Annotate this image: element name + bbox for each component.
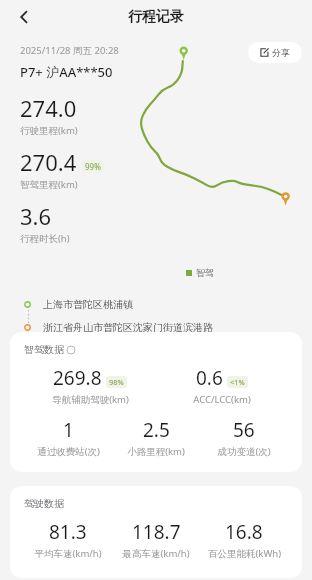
staticText: 最高车速(km/h) [122, 547, 190, 560]
staticText: 118.7 [132, 519, 181, 545]
staticText: 3.6 [20, 201, 52, 231]
staticText: 0.6 [196, 365, 223, 391]
staticText: 成功变道(次) [217, 445, 271, 458]
staticText: 98% [109, 377, 124, 387]
button[interactable]: Back [8, 1, 40, 33]
staticText: 274.0 [20, 93, 77, 123]
staticText: 2.5 [143, 417, 170, 443]
staticText: 浙江省舟山市普陀区沈家门街道滨港路 [43, 321, 213, 334]
staticText: 行驶里程(km) [20, 124, 78, 137]
staticText: 平均车速(km/h) [34, 547, 102, 560]
staticText: 270.4 [20, 147, 77, 177]
staticText: 行程记录 [128, 8, 184, 26]
staticText: ACC/LCC(km) [193, 393, 251, 406]
staticText: 269.8 [53, 365, 102, 391]
staticText: <1% [230, 377, 245, 387]
button[interactable]: 分享 [248, 42, 302, 63]
staticText: 智驾数据 [24, 343, 64, 356]
staticText: 99% [85, 161, 101, 172]
staticText: 通过收费站(次) [37, 445, 100, 458]
staticText: 16.8 [225, 519, 263, 545]
staticText: 1 [63, 417, 74, 443]
staticText: 56 [233, 417, 255, 443]
staticText: 2025/11/28 周五 20:28 [20, 44, 119, 57]
staticText: 上海市普陀区桃浦镇 [43, 298, 133, 311]
staticText: 导航辅助驾驶(km) [52, 393, 129, 406]
staticText: 智驾 [196, 267, 214, 278]
staticText: 小路里程(km) [127, 445, 185, 458]
staticText: 分享 [272, 47, 290, 58]
staticText: 智驾里程(km) [20, 178, 78, 191]
staticText: 81.3 [49, 519, 87, 545]
staticText: 驾驶数据 [24, 497, 64, 510]
staticText: P7+ 沪AA***50 [20, 63, 113, 81]
staticText: 行程时长(h) [20, 232, 70, 245]
staticText: 百公里能耗(kWh) [208, 547, 281, 560]
